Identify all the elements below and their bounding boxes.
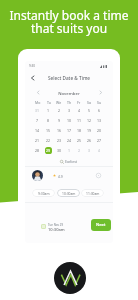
button[interactable]: 9: [56, 117, 63, 124]
staticText: 2: [78, 148, 81, 153]
button[interactable]: 8: [45, 117, 52, 124]
staticText: 14: [35, 128, 40, 133]
button[interactable]: 13: [96, 117, 103, 124]
staticText: 25: [77, 138, 82, 143]
staticText: 30: [57, 148, 62, 153]
button[interactable]: 24: [66, 137, 73, 144]
staticText: Earliest: [65, 159, 78, 164]
staticText: 10:30am: [62, 191, 76, 195]
staticText: 26: [87, 138, 92, 143]
staticText: 19: [87, 128, 92, 133]
button[interactable]: 12: [86, 117, 93, 124]
staticText: 3: [88, 148, 91, 153]
staticText: 1: [68, 148, 71, 153]
button[interactable]: 25: [76, 137, 83, 144]
staticText: 4: [98, 148, 101, 153]
button[interactable]: More info: [95, 172, 102, 179]
staticText: 15: [46, 128, 51, 133]
button[interactable]: 20: [96, 127, 103, 134]
staticText: 23: [57, 138, 62, 143]
button[interactable]: Next month: [97, 88, 105, 96]
button[interactable]: 3: [86, 147, 93, 154]
staticText: Select Date & Time: [25, 75, 113, 81]
button[interactable]: Back: [27, 73, 37, 83]
button[interactable]: 19: [86, 127, 93, 134]
staticText: Su: [97, 100, 102, 105]
button[interactable]: 1: [66, 147, 73, 154]
staticText: 10:30am: [48, 227, 65, 233]
button[interactable]: 10: [66, 117, 73, 124]
button[interactable]: 27: [96, 137, 103, 144]
staticText: 24: [67, 138, 72, 143]
button[interactable]: 1: [45, 107, 52, 114]
button[interactable]: 4: [76, 107, 83, 114]
staticText: 27: [97, 138, 102, 143]
button[interactable]: 10:30am: [57, 189, 80, 197]
button[interactable]: 11:30am: [81, 189, 104, 197]
button[interactable]: 30: [56, 147, 63, 154]
staticText: Instantly book a time that suits you: [0, 7, 138, 36]
staticText: 9:30am: [38, 191, 50, 195]
staticText: 6: [98, 108, 101, 113]
staticText: 7: [36, 118, 39, 123]
button[interactable]: 11: [76, 117, 83, 124]
button[interactable]: 23: [56, 137, 63, 144]
staticText: 5: [88, 108, 91, 113]
staticText: 20: [97, 128, 102, 133]
staticText: 28: [35, 148, 40, 153]
staticText: Next: [96, 222, 106, 228]
staticText: 9: [58, 118, 61, 123]
staticText: 11: [77, 118, 82, 123]
staticText: 10: [67, 118, 72, 123]
staticText: Tue Nov 29: [48, 223, 64, 227]
button[interactable]: 9:30am: [32, 189, 55, 197]
staticText: 12: [87, 118, 92, 123]
staticText: 1: [47, 108, 50, 113]
staticText: Mo: [35, 100, 41, 105]
button[interactable]: 17: [66, 127, 73, 134]
staticText: 2: [58, 108, 61, 113]
staticText: 16: [57, 128, 62, 133]
staticText: 4: [78, 108, 81, 113]
staticText: Fr: [77, 100, 81, 105]
staticText: Tu: [47, 100, 51, 105]
button[interactable]: 31: [34, 107, 41, 114]
staticText: 21: [35, 138, 40, 143]
button[interactable]: 6: [96, 107, 103, 114]
staticText: We: [56, 100, 62, 105]
staticText: 11:30am: [86, 191, 100, 195]
staticText: 9:30: [29, 64, 36, 68]
button[interactable]: 28: [34, 147, 41, 154]
staticText: 3: [68, 108, 71, 113]
button[interactable]: Next: [91, 219, 111, 231]
button[interactable]: 2: [56, 107, 63, 114]
button[interactable]: Earliest: [60, 159, 78, 164]
button[interactable]: 3: [66, 107, 73, 114]
button[interactable]: 4: [96, 147, 103, 154]
staticText: Sa: [87, 100, 91, 105]
button[interactable]: 18: [76, 127, 83, 134]
staticText: 4.9: [58, 174, 63, 178]
button[interactable]: 2: [76, 147, 83, 154]
button[interactable]: 16: [56, 127, 63, 134]
button[interactable]: 14: [34, 127, 41, 134]
button[interactable]: 5: [86, 107, 93, 114]
staticText: November: [25, 90, 113, 96]
staticText: 29: [46, 148, 51, 153]
button[interactable]: Previous month: [34, 88, 42, 96]
button[interactable]: 26: [86, 137, 93, 144]
button[interactable]: 7: [34, 117, 41, 124]
staticText: 13: [97, 118, 102, 123]
button[interactable]: 22: [45, 137, 52, 144]
staticText: Th: [67, 100, 72, 105]
staticText: 31: [35, 108, 40, 113]
staticText: 18: [77, 128, 82, 133]
staticText: 22: [46, 138, 51, 143]
staticText: 8: [47, 118, 50, 123]
button[interactable]: 15: [45, 127, 52, 134]
staticText: 17: [67, 128, 72, 133]
button[interactable]: 29: [45, 147, 52, 154]
button[interactable]: 21: [34, 137, 41, 144]
